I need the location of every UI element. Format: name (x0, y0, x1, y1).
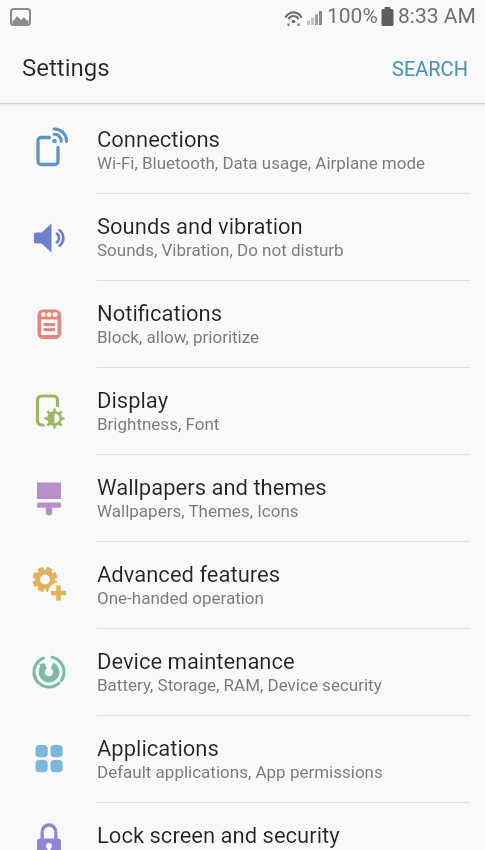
staticText: Block, allow, prioritize (97, 327, 260, 347)
staticText: 8:33 AM (398, 4, 476, 29)
staticText: Notifications (97, 301, 223, 327)
staticText: Sounds and vibration (97, 214, 303, 240)
button[interactable]: Applications (0, 716, 485, 802)
staticText: Settings (22, 54, 110, 82)
staticText: Device maintenance (97, 649, 295, 675)
button[interactable]: Notifications (0, 281, 485, 367)
button[interactable]: Advanced features (0, 542, 485, 628)
button[interactable]: Connections (0, 107, 485, 193)
staticText: 100% (327, 4, 378, 29)
staticText: Display (97, 388, 169, 414)
staticText: Battery, Storage, RAM, Device security (97, 675, 382, 695)
button[interactable]: Display (0, 368, 485, 454)
staticText: Sounds, Vibration, Do not disturb (97, 240, 344, 260)
staticText: Wi-Fi, Bluetooth, Data usage, Airplane m… (97, 153, 426, 173)
staticText: One-handed operation (97, 588, 264, 608)
button[interactable]: Wallpapers and themes (0, 455, 485, 541)
staticText: Wallpapers and themes (97, 475, 327, 501)
staticText: SEARCH (392, 57, 468, 80)
button[interactable]: Lock screen and security (0, 803, 485, 850)
staticText: Default applications, App permissions (97, 762, 383, 782)
staticText: Advanced features (97, 562, 281, 588)
button[interactable]: SEARCH (392, 57, 468, 80)
button[interactable]: Sounds and vibration (0, 194, 485, 280)
staticText: Connections (97, 127, 220, 153)
staticText: Applications (97, 736, 219, 762)
staticText: Brightness, Font (97, 414, 220, 434)
staticText: Wallpapers, Themes, Icons (97, 501, 299, 521)
button[interactable]: Device maintenance (0, 629, 485, 715)
staticText: Lock screen and security (97, 823, 340, 849)
